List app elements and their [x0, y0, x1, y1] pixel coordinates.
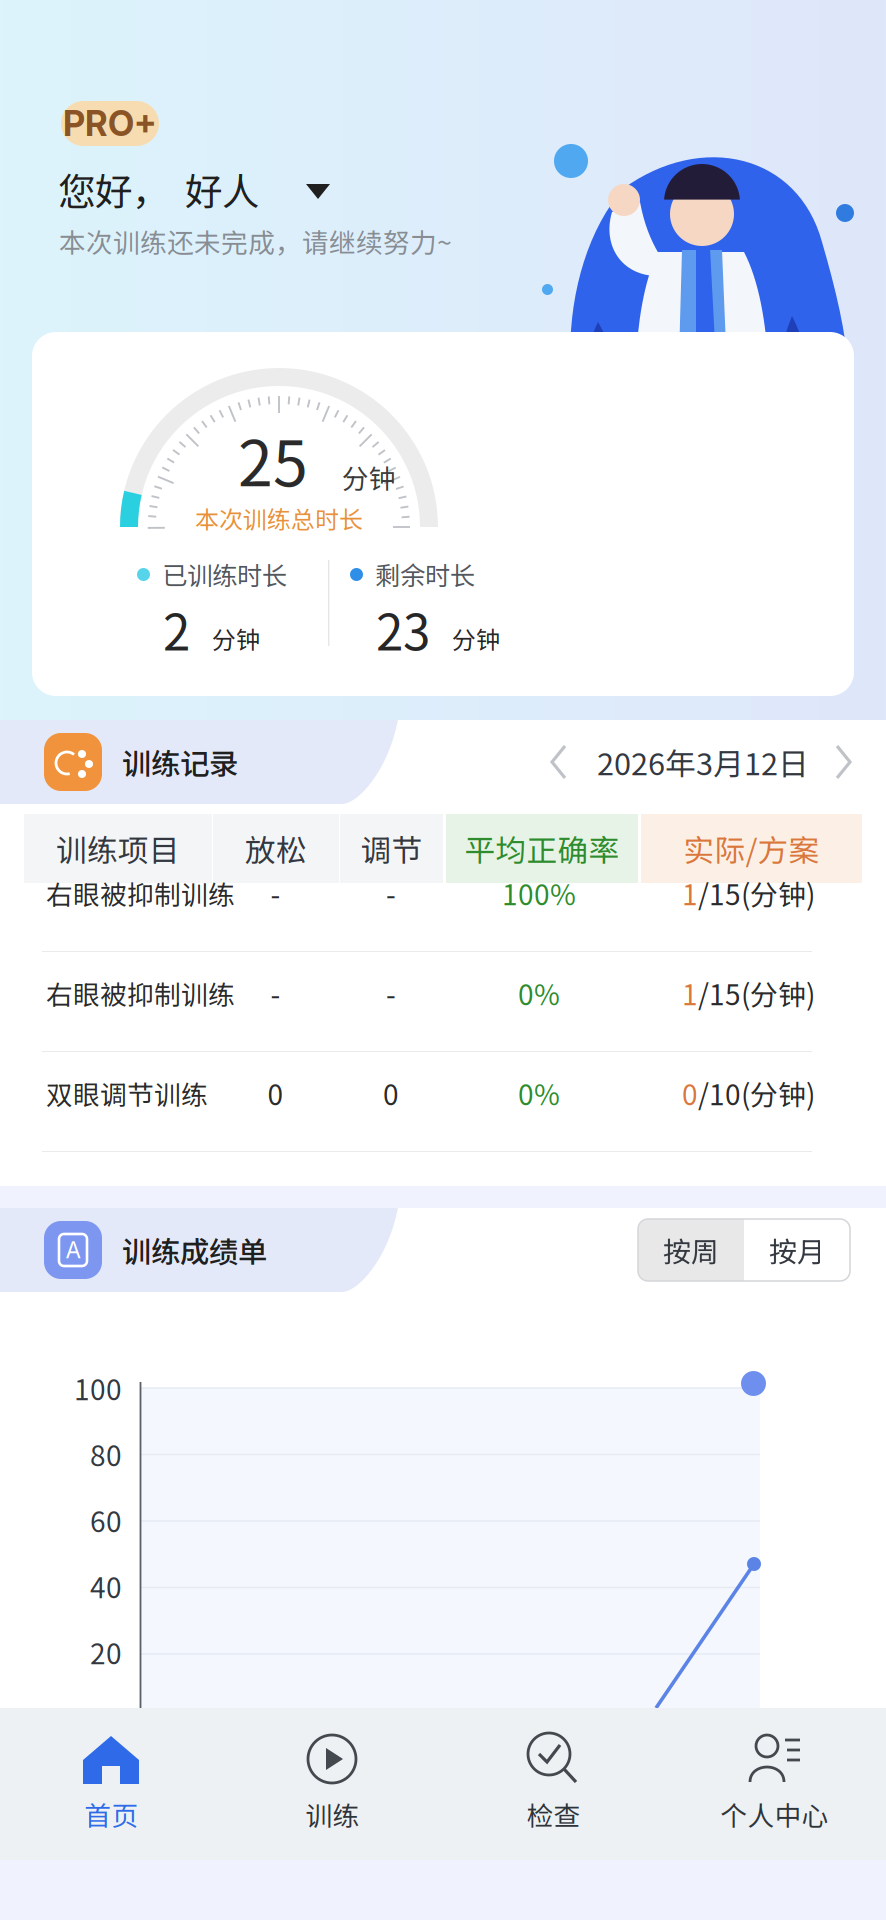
staticText: 个人中心 — [720, 1795, 828, 1833]
button[interactable]: 按月 — [744, 1219, 850, 1281]
staticText: 20 — [90, 1632, 122, 1672]
button[interactable]: 训练 — [222, 1708, 443, 1860]
button[interactable]: 检查 — [443, 1708, 664, 1860]
staticText: 已训练时长 — [162, 556, 287, 592]
staticText: 1 — [682, 873, 698, 913]
staticText: 分钟 — [212, 621, 260, 656]
staticText: 放松 — [245, 826, 307, 871]
staticText: - — [270, 973, 280, 1013]
staticText: 分钟 — [452, 621, 500, 656]
staticText: /15(分钟) — [698, 873, 815, 913]
staticText: 100 — [74, 1368, 122, 1408]
staticText: 40 — [90, 1566, 122, 1606]
button[interactable]: 您好， 好人 — [58, 160, 388, 218]
staticText: 训练 — [305, 1795, 359, 1833]
staticText: 本次训练还未完成，请继续努力~ — [59, 222, 452, 260]
staticText: 调节 — [360, 826, 422, 871]
staticText: 1 — [682, 973, 698, 1013]
staticText: 训练成绩单 — [122, 1229, 267, 1271]
staticText: 按周 — [663, 1230, 719, 1270]
staticText: 2026年3月12日 — [597, 740, 809, 784]
staticText: 80 — [90, 1434, 122, 1474]
staticText: 双眼调节训练 — [46, 1074, 208, 1112]
staticText: 剩余时长 — [375, 556, 475, 592]
button[interactable]: 按周 — [638, 1219, 744, 1281]
staticText: 100% — [502, 873, 576, 913]
button[interactable]: 首页 — [1, 1708, 222, 1860]
staticText: 右眼被抑制训练 — [46, 874, 235, 912]
staticText: 按月 — [769, 1230, 825, 1270]
staticText: 0% — [518, 973, 560, 1013]
staticText: 本次训练总时长 — [195, 501, 363, 535]
staticText: 实际/方案 — [683, 826, 819, 871]
staticText: 60 — [90, 1500, 122, 1540]
button[interactable]: Previous day — [538, 732, 582, 792]
staticText: /10(分钟) — [698, 1073, 815, 1113]
staticText: 您好， 好人 — [58, 162, 259, 216]
staticText: - — [386, 973, 396, 1013]
button[interactable]: 个人中心 — [664, 1708, 885, 1860]
staticText: 0 — [267, 1073, 283, 1113]
staticText: 分钟 — [342, 458, 396, 496]
staticText: /15(分钟) — [698, 973, 815, 1013]
staticText: A — [65, 1236, 80, 1264]
staticText: 25 — [238, 414, 308, 504]
button[interactable]: PRO+ — [61, 101, 159, 146]
staticText: 0 — [383, 1073, 399, 1113]
staticText: 检查 — [526, 1795, 580, 1833]
staticText: 23 — [376, 593, 430, 665]
staticText: PRO+ — [63, 102, 157, 144]
staticText: - — [270, 873, 280, 913]
staticText: 2 — [163, 593, 190, 665]
button[interactable]: Next day — [820, 732, 864, 792]
staticText: 0% — [518, 1073, 560, 1113]
staticText: 训练项目 — [56, 826, 180, 871]
staticText: 首页 — [84, 1795, 138, 1833]
staticText: - — [386, 873, 396, 913]
staticText: 平均正确率 — [464, 826, 619, 871]
staticText: 训练记录 — [122, 741, 238, 783]
staticText: 0 — [682, 1073, 698, 1113]
staticText: 右眼被抑制训练 — [46, 974, 235, 1012]
